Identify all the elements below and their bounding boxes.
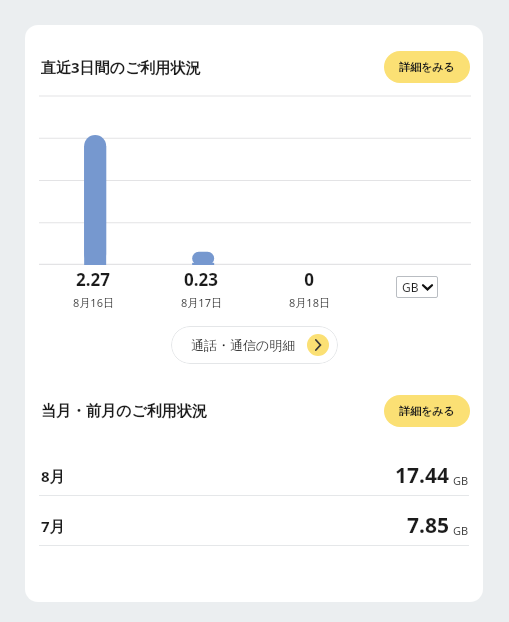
staticText: 8月18日	[289, 295, 330, 310]
staticText: 詳細をみる	[399, 60, 455, 74]
staticText: 当月・前月のご利用状況	[41, 402, 207, 421]
staticText: 0.23	[184, 268, 218, 291]
staticText: 7.85	[407, 511, 449, 540]
button[interactable]: 通話・通信の明細	[171, 326, 338, 364]
staticText: 8月17日	[181, 295, 222, 310]
staticText: 0	[304, 268, 314, 291]
staticText: 詳細をみる	[399, 404, 455, 418]
staticText: GB	[402, 279, 419, 295]
button[interactable]: Select unit, GB	[396, 276, 438, 298]
staticText: GB	[453, 523, 469, 538]
staticText: 通話・通信の明細	[191, 337, 296, 353]
button[interactable]: 詳細をみる	[384, 51, 470, 83]
staticText: 8月16日	[73, 295, 114, 310]
button[interactable]: 詳細をみる	[384, 395, 470, 427]
staticText: 8月	[41, 466, 65, 486]
staticText: 7月	[41, 516, 65, 536]
staticText: 直近3日間のご利用状況	[41, 57, 201, 77]
staticText: 17.44	[395, 461, 449, 490]
staticText: 2.27	[76, 268, 110, 291]
staticText: GB	[453, 473, 469, 488]
